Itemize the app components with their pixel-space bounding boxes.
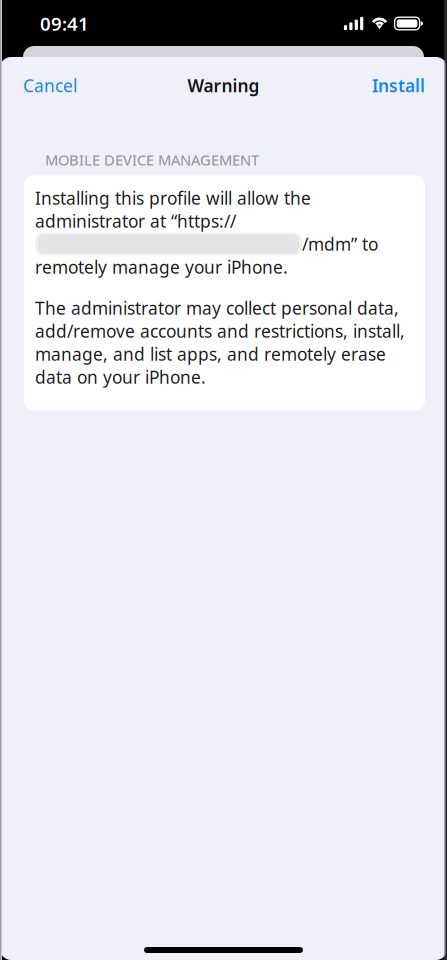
staticText: MOBILE DEVICE MANAGEMENT <box>45 150 259 169</box>
staticText: administrator at “https:// <box>35 209 236 232</box>
button[interactable]: Install <box>360 65 447 106</box>
button[interactable]: Cancel <box>0 65 89 106</box>
staticText: data on your iPhone. <box>35 366 206 389</box>
staticText: Install <box>372 74 425 97</box>
staticText: add/remove accounts and restrictions, in… <box>35 319 405 342</box>
staticText: 09:41 <box>40 11 89 36</box>
staticText: Warning <box>187 74 259 97</box>
staticText: Installing this profile will allow the <box>35 186 311 209</box>
staticText: /mdm” to <box>302 232 378 255</box>
staticText: manage, and list apps, and remotely eras… <box>35 343 386 366</box>
staticText: remotely manage your iPhone. <box>35 255 288 278</box>
staticText: The administrator may collect personal d… <box>35 296 399 319</box>
staticText: Cancel <box>23 74 77 97</box>
